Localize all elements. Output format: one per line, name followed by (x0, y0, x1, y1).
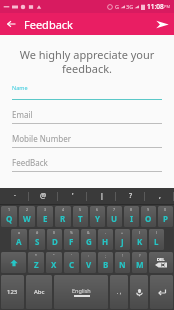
staticText: DEL (157, 257, 165, 262)
button[interactable]: 0 (158, 206, 173, 227)
staticText: Name (12, 84, 28, 91)
button[interactable]: , (145, 188, 174, 204)
staticText: * (35, 253, 37, 258)
staticText: K (137, 236, 143, 247)
button[interactable]: 3 (37, 206, 53, 227)
button[interactable]: | (87, 188, 116, 204)
staticText: + (121, 230, 124, 235)
staticText: L (154, 236, 159, 247)
button[interactable]: . , (110, 275, 128, 309)
staticText: @ (40, 191, 47, 201)
staticText: Abc (34, 288, 45, 296)
staticText: P (163, 213, 168, 224)
staticText: S (35, 236, 40, 247)
staticText: U (111, 213, 118, 224)
staticText: 5 (79, 207, 82, 212)
staticText: 0 (164, 207, 167, 212)
button[interactable]: Back (0, 13, 22, 35)
button[interactable]: 1 (1, 206, 17, 227)
staticText: ? (139, 253, 141, 258)
staticText: Mobile Number (12, 133, 71, 144)
button[interactable]: 8 (124, 206, 139, 227)
staticText: J (121, 236, 124, 247)
staticText: 11:08 (147, 2, 164, 11)
button[interactable]: Voice input (130, 275, 148, 309)
button[interactable]: 9 (141, 206, 156, 227)
staticText: G (86, 236, 92, 247)
button[interactable]: ? (116, 188, 145, 204)
button[interactable]: ! (115, 252, 130, 273)
staticText: ! (122, 253, 123, 258)
staticText: We highly appreciate your feedback. (14, 47, 160, 76)
button[interactable]: * (28, 252, 44, 273)
staticText: % (70, 230, 73, 235)
staticText: 6 (96, 207, 99, 212)
staticText: Email (12, 109, 33, 120)
button[interactable]: a (11, 229, 27, 250)
staticText: a (18, 230, 20, 235)
button[interactable]: ; (98, 252, 113, 273)
button[interactable]: ) (149, 229, 164, 250)
staticText: X (51, 259, 57, 270)
button[interactable]: & (81, 229, 96, 250)
staticText: English (72, 287, 91, 294)
staticText: | (100, 191, 104, 201)
button[interactable]: $ (47, 229, 62, 250)
button[interactable]: 4 (55, 206, 71, 227)
button[interactable]: 7 (107, 206, 122, 227)
staticText: PM (164, 4, 171, 9)
button[interactable]: Abc (26, 275, 52, 309)
staticText: W (23, 213, 31, 224)
staticText: I (130, 213, 134, 224)
staticText: O (145, 213, 152, 224)
button[interactable]: : (81, 252, 96, 273)
staticText: M (136, 259, 144, 270)
staticText: V (86, 259, 92, 270)
staticText: 8 (130, 207, 133, 212)
staticText: E (43, 213, 48, 224)
button[interactable]: - (98, 229, 113, 250)
button[interactable]: 123 (1, 275, 24, 309)
staticText: . , (117, 289, 121, 296)
staticText: & (87, 230, 90, 235)
button[interactable]: 6 (90, 206, 105, 227)
staticText: D (52, 236, 58, 247)
staticText: ' (72, 191, 74, 201)
button[interactable]: 2 (19, 206, 35, 227)
button[interactable]: # (29, 229, 45, 250)
button[interactable]: G (0, 0, 174, 13)
button[interactable]: + (115, 229, 130, 250)
button[interactable]: ? (132, 252, 147, 273)
staticText: 3 (44, 207, 47, 212)
staticText: ' (71, 253, 72, 258)
button[interactable]: Shift (1, 252, 26, 273)
staticText: 7 (113, 207, 116, 212)
button[interactable]: " (46, 252, 62, 273)
staticText: R (60, 213, 66, 224)
button[interactable]: Enter (150, 275, 173, 309)
button[interactable]: 5 (73, 206, 88, 227)
staticText: 2 (26, 207, 29, 212)
button[interactable]: % (64, 229, 79, 250)
staticText: · (14, 191, 16, 201)
staticText: T (78, 213, 83, 224)
button[interactable]: ' (64, 252, 79, 273)
staticText: G (115, 3, 120, 10)
staticText: Z (34, 259, 39, 270)
button[interactable]: Send (150, 13, 174, 35)
staticText: 9 (147, 207, 150, 212)
button[interactable]: Space (54, 275, 108, 309)
staticText: $ (53, 230, 56, 235)
button[interactable]: ' (58, 188, 87, 204)
staticText: Q (6, 213, 13, 224)
button[interactable]: @ (29, 188, 58, 204)
staticText: # (36, 230, 39, 235)
staticText: C (69, 259, 75, 270)
staticText: N (119, 259, 126, 270)
staticText: FeedBack (12, 157, 48, 168)
staticText: 4 (62, 207, 65, 212)
staticText: - (105, 230, 107, 235)
button[interactable]: ( (132, 229, 147, 250)
button[interactable]: · (0, 188, 29, 204)
button[interactable]: Delete (149, 252, 173, 273)
